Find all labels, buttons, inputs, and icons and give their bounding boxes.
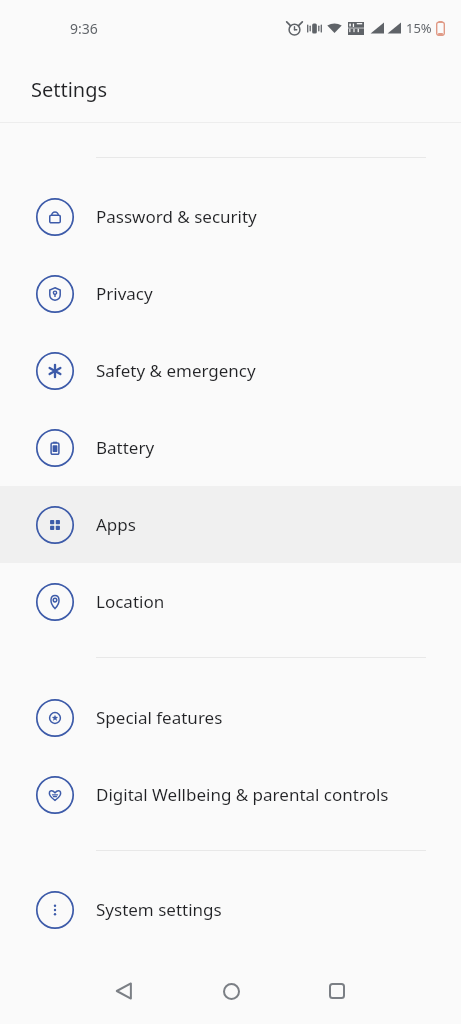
staticText: Password & security [96, 205, 257, 228]
staticText: Location [96, 590, 165, 613]
button[interactable]: Back [100, 967, 148, 1015]
button[interactable]: Home [207, 967, 255, 1015]
button[interactable]: Special features [0, 679, 461, 756]
button[interactable]: Password & security [0, 178, 461, 255]
button[interactable]: Recent apps [313, 967, 361, 1015]
staticText: Special features [96, 706, 223, 729]
staticText: System settings [96, 898, 222, 921]
staticText: Digital Wellbeing & parental controls [96, 783, 389, 806]
staticText: Settings [31, 76, 108, 103]
button[interactable]: Battery [0, 409, 461, 486]
button[interactable]: Safety & emergency [0, 332, 461, 409]
button[interactable]: Privacy [0, 255, 461, 332]
staticText: 9:36 [70, 19, 98, 38]
button[interactable]: System settings [0, 871, 461, 948]
staticText: Privacy [96, 282, 153, 305]
staticText: Battery [96, 436, 155, 459]
button[interactable]: Location [0, 563, 461, 640]
button[interactable]: Digital Wellbeing & parental controls [0, 756, 461, 833]
button[interactable]: Apps [0, 486, 461, 563]
staticText: Safety & emergency [96, 359, 256, 382]
staticText: 15% [406, 19, 432, 37]
staticText: Apps [96, 513, 136, 536]
